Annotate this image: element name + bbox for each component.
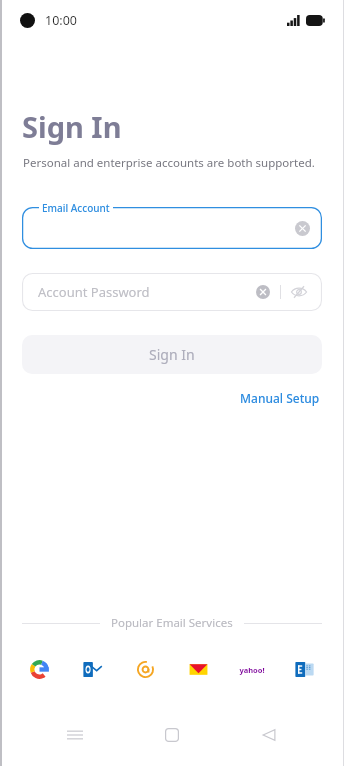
button[interactable]: Manual Setup [238, 387, 322, 409]
button[interactable]: Other mail [130, 654, 161, 685]
staticText: Manual Setup [240, 390, 320, 406]
button[interactable]: Outlook [77, 654, 108, 685]
staticText: Sign In [149, 345, 195, 364]
button[interactable]: Mail [183, 654, 214, 685]
staticText: Sign In [22, 107, 122, 146]
button[interactable]: Recent apps [53, 718, 97, 752]
staticText: 10:00 [45, 12, 77, 29]
button[interactable]: Yahoo [236, 654, 267, 685]
staticText: Popular Email Services [111, 615, 233, 631]
staticText: yahoo! [239, 665, 265, 675]
button[interactable]: Home [150, 718, 194, 752]
button[interactable]: Clear email [290, 216, 314, 240]
button[interactable]: Back [247, 718, 291, 752]
button[interactable]: Show password [287, 280, 311, 304]
staticText: Account Password [38, 283, 150, 301]
staticText: Personal and enterprise accounts are bot… [23, 155, 315, 171]
button[interactable]: Exchange [289, 654, 320, 685]
button[interactable]: Gmail [24, 654, 55, 685]
button[interactable]: Account Password [22, 273, 322, 311]
button[interactable]: Clear password [252, 281, 274, 303]
button[interactable]: Email Account [22, 207, 322, 249]
staticText: Email Account [42, 201, 110, 215]
button[interactable]: Sign In [22, 335, 322, 374]
